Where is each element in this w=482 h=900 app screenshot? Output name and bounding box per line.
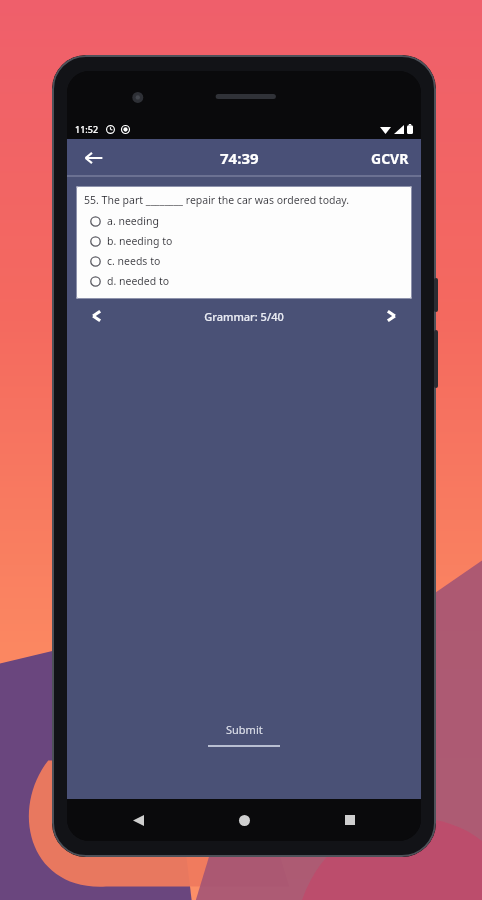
- button[interactable]: Recent apps: [335, 805, 365, 835]
- button[interactable]: d. needed to: [84, 271, 406, 291]
- staticText: c. needs to: [107, 254, 161, 268]
- button[interactable]: b. needing to: [84, 231, 406, 251]
- staticText: 11:52: [75, 123, 99, 135]
- button[interactable]: Previous question: [81, 301, 111, 331]
- staticText: b. needing to: [107, 234, 173, 248]
- button[interactable]: a. needing: [84, 211, 406, 231]
- button[interactable]: Back: [123, 805, 153, 835]
- button[interactable]: Submit: [67, 722, 421, 747]
- button[interactable]: Home: [229, 805, 259, 835]
- staticText: Submit: [226, 722, 263, 737]
- staticText: a. needing: [107, 214, 159, 228]
- staticText: d. needed to: [107, 274, 170, 288]
- button[interactable]: GCVR: [369, 149, 411, 168]
- button[interactable]: c. needs to: [84, 251, 406, 271]
- button[interactable]: Back: [77, 141, 111, 175]
- staticText: 74:39: [220, 148, 259, 168]
- staticText: Grammar: 5/40: [204, 309, 284, 324]
- button[interactable]: Next question: [377, 301, 407, 331]
- staticText: 55. The part ________ repair the car was…: [84, 193, 350, 207]
- staticText: GCVR: [371, 149, 409, 168]
